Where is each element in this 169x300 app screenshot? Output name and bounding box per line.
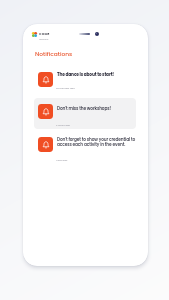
staticText: 1 day ago [56,158,68,161]
button[interactable] [34,65,136,96]
button[interactable] [34,132,136,166]
staticText: The dance is about to start! [57,71,136,77]
staticText: COME [39,32,50,37]
staticText: together [39,38,49,40]
button[interactable] [34,98,136,129]
staticText: Notifications [35,50,73,58]
staticText: 30 minutes ago [56,86,75,89]
other: Notification [42,76,50,84]
other: Notification [42,108,50,116]
staticText: 2 hours ago [56,123,71,126]
other: Notification [42,141,50,149]
staticText: Don't miss the workshops! [57,105,136,111]
staticText: Don't forget to show your credential to … [57,136,136,147]
